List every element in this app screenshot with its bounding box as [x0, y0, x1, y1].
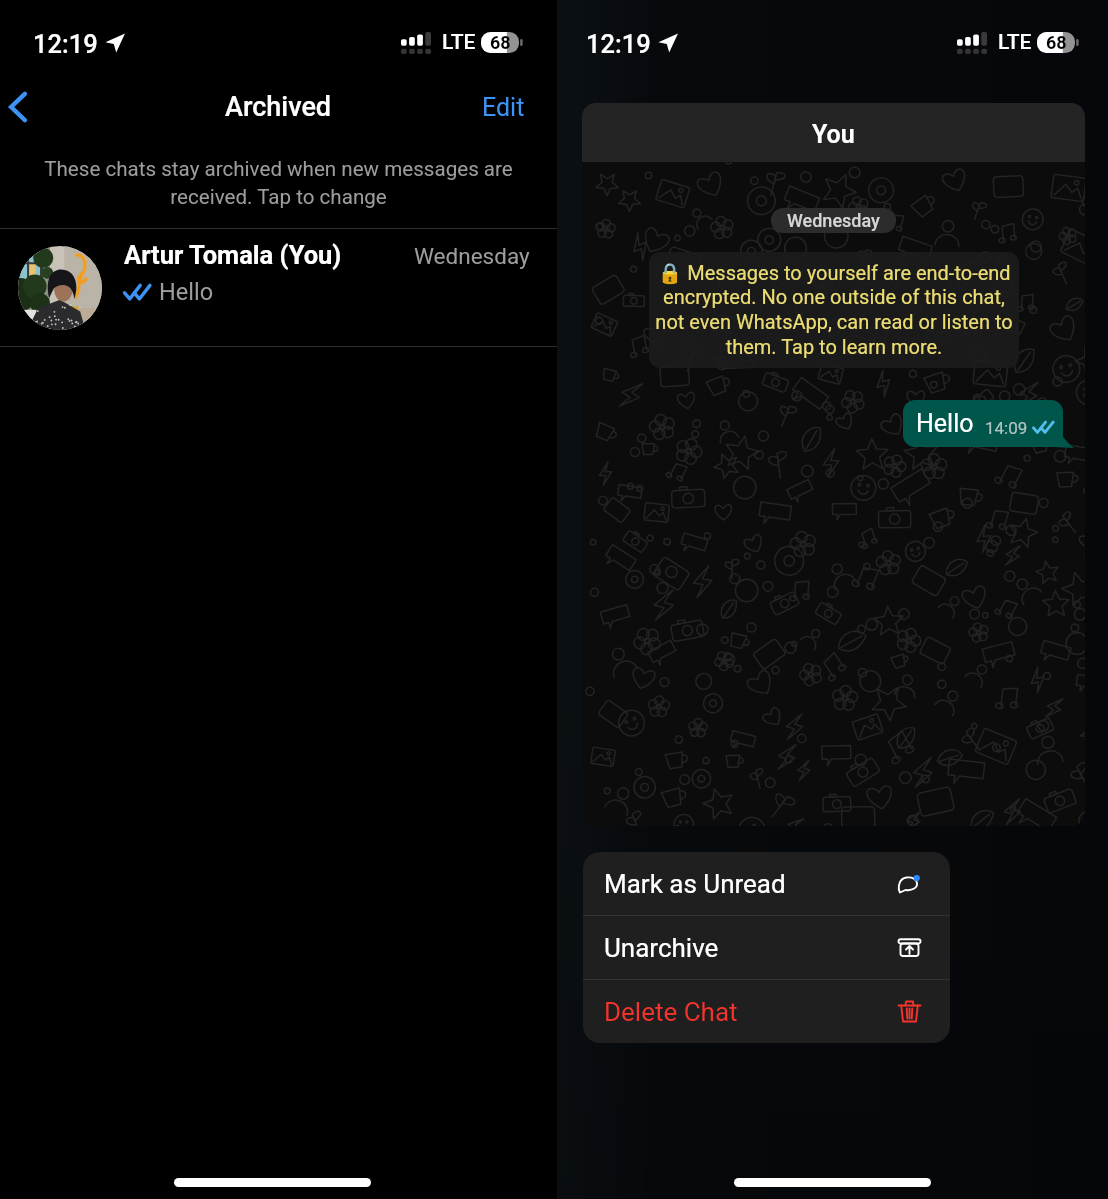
- staticText: 68: [1046, 32, 1067, 53]
- staticText: Artur Tomala (You): [124, 240, 342, 270]
- staticText: These chats stay archived when new messa…: [12, 157, 545, 209]
- staticText: Edit: [482, 93, 525, 122]
- other: Profile photo: [18, 246, 102, 330]
- button[interactable]: Profile photo: [0, 229, 557, 346]
- staticText: Archived: [225, 91, 332, 123]
- staticText: Hello: [159, 278, 214, 306]
- staticText: 12:19: [33, 29, 98, 59]
- button[interactable]: Delete Chat: [583, 980, 950, 1043]
- button[interactable]: Mark as Unread: [583, 852, 950, 915]
- staticText: You: [812, 120, 855, 149]
- staticText: 14:09: [985, 418, 1028, 438]
- button[interactable]: Unarchive: [583, 916, 950, 979]
- staticText: Unarchive: [604, 933, 719, 963]
- staticText: Wednesday: [787, 210, 880, 231]
- staticText: Wednesday: [414, 243, 530, 269]
- button[interactable]: 🔒 Messages to yourself are end-to-end en…: [649, 252, 1019, 368]
- button[interactable]: Hello: [903, 400, 1074, 447]
- button[interactable]: Back: [0, 76, 54, 138]
- staticText: Mark as Unread: [604, 869, 786, 899]
- button[interactable]: Wednesday: [771, 208, 896, 233]
- staticText: 12:19: [586, 29, 651, 59]
- staticText: Delete Chat: [604, 997, 738, 1027]
- staticText: LTE: [998, 30, 1032, 55]
- staticText: 68: [490, 32, 511, 53]
- staticText: LTE: [442, 30, 476, 55]
- staticText: 🔒 Messages to yourself are end-to-end en…: [653, 261, 1015, 359]
- staticText: Hello: [916, 409, 974, 438]
- button[interactable]: Edit: [482, 76, 525, 138]
